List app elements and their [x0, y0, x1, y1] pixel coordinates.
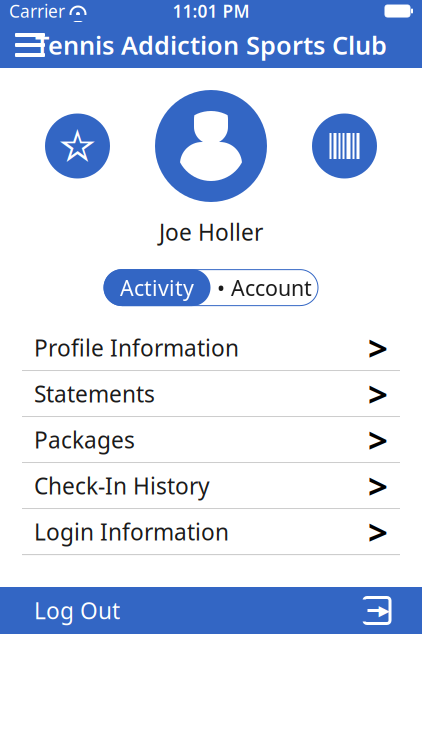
- staticText: Statements: [34, 379, 155, 409]
- button[interactable]: Login Information: [0, 509, 422, 554]
- staticText: >: [368, 509, 388, 555]
- staticText: Activity: [120, 273, 194, 302]
- staticText: Tennis Addiction Sports Club: [35, 28, 387, 62]
- staticText: ★: [65, 130, 90, 162]
- button[interactable]: Menu: [8, 23, 52, 67]
- button[interactable]: Statements: [0, 371, 422, 416]
- staticText: Profile Information: [34, 333, 239, 363]
- staticText: Packages: [34, 425, 135, 455]
- button[interactable]: • Account: [210, 269, 318, 306]
- button[interactable]: Check-In History: [0, 463, 422, 508]
- staticText: Login Information: [34, 517, 229, 547]
- button[interactable]: Activity: [103, 269, 210, 306]
- staticText: Check-In History: [34, 471, 210, 501]
- staticText: Carrier: [9, 0, 65, 22]
- button[interactable]: Log Out: [0, 587, 422, 634]
- staticText: >: [368, 417, 388, 463]
- staticText: Joe Holler: [159, 217, 263, 247]
- button[interactable]: Profile Information: [0, 325, 422, 370]
- staticText: • Account: [217, 273, 312, 302]
- button[interactable]: Profile photo: [155, 90, 267, 202]
- button[interactable]: Membership barcode: [312, 113, 377, 178]
- button[interactable]: Packages: [0, 417, 422, 462]
- staticText: ★: [57, 120, 98, 172]
- staticText: ▶: [378, 602, 389, 619]
- staticText: >: [368, 463, 388, 509]
- staticText: >: [368, 371, 388, 417]
- staticText: >: [368, 325, 388, 371]
- staticText: 11:01 PM: [172, 0, 249, 22]
- button[interactable]: Favorites: [45, 113, 110, 178]
- staticText: Log Out: [34, 595, 120, 625]
